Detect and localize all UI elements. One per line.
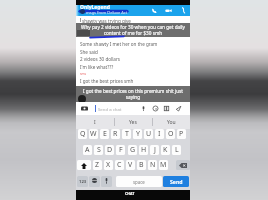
button[interactable]: L (172, 145, 181, 155)
staticText: H (141, 145, 147, 155)
staticText: Q (80, 129, 86, 139)
staticText: V (128, 160, 133, 170)
staticText: U (146, 129, 152, 139)
staticText: P (179, 129, 184, 139)
staticText: Z (95, 160, 100, 170)
button[interactable]: More options (180, 6, 187, 15)
button[interactable]: G (128, 145, 137, 155)
button[interactable]: 123 (77, 176, 88, 187)
button[interactable] (176, 160, 190, 170)
button[interactable]: F (116, 145, 125, 155)
button[interactable]: V (126, 160, 135, 170)
staticText: K (163, 145, 168, 155)
button[interactable]: H (139, 145, 148, 155)
button[interactable]: U (144, 129, 153, 139)
staticText: R (113, 129, 118, 139)
staticText: D (107, 145, 113, 155)
button[interactable]: Stickers (152, 105, 159, 112)
button[interactable]: Send (175, 105, 182, 112)
button[interactable]: B (137, 160, 146, 170)
button[interactable]: Voice message (140, 105, 147, 112)
button[interactable]: M (159, 160, 168, 170)
button[interactable]: N (148, 160, 157, 170)
button[interactable]: E (100, 129, 109, 139)
button[interactable]: Send (163, 176, 189, 187)
staticText: You (167, 119, 176, 126)
button[interactable]: J (150, 145, 159, 155)
button[interactable]: Q (78, 129, 87, 139)
staticText: A (85, 145, 90, 155)
staticText: Send (170, 178, 183, 185)
button[interactable]: Yes (114, 115, 152, 129)
button[interactable]: C (115, 160, 124, 170)
staticText: sms (80, 72, 87, 76)
staticText: I (158, 129, 161, 139)
staticText: T (125, 129, 129, 139)
staticText: Some shawty I met her on the gram (80, 41, 158, 47)
staticText: N (150, 160, 156, 170)
button[interactable]: Y (133, 129, 142, 139)
button[interactable] (101, 176, 112, 187)
staticText: S (97, 145, 101, 155)
button[interactable]: Gallery (163, 105, 170, 112)
staticText: Y (136, 129, 140, 139)
button[interactable]: O (166, 129, 175, 139)
staticText: L (175, 145, 179, 155)
button[interactable]: W (89, 129, 98, 139)
staticText: CHAT (125, 191, 135, 196)
staticText: space (133, 179, 145, 185)
button[interactable]: X (104, 160, 113, 170)
staticText: shawty was trying give (82, 18, 131, 24)
staticText: Why pay 2 videos for 30 when you can get… (79, 24, 187, 36)
button[interactable]: A (83, 145, 92, 155)
button[interactable]: space (116, 176, 162, 187)
staticText: C (117, 160, 122, 170)
button[interactable]: I (155, 129, 164, 139)
staticText: J (154, 145, 156, 155)
staticText: F (119, 145, 123, 155)
staticText: E (103, 129, 107, 139)
staticText: G (130, 145, 136, 155)
button[interactable]: P (177, 129, 186, 139)
staticText: I got the best prices smh (80, 78, 134, 84)
button[interactable]: Voice call (150, 6, 159, 15)
button[interactable]: Z (93, 160, 102, 170)
staticText: I got the best prices on this premium sh… (82, 88, 184, 100)
staticText: I (94, 119, 96, 126)
staticText: O (168, 129, 174, 139)
staticText: I'm like what??? (80, 64, 114, 70)
button[interactable]: T (122, 129, 131, 139)
staticText: B (139, 160, 144, 170)
staticText: 123 (79, 179, 87, 185)
button[interactable]: You (152, 115, 190, 129)
staticText: She said (80, 49, 98, 55)
button[interactable]: K (161, 145, 170, 155)
button[interactable]: Camera (81, 105, 88, 112)
staticText: Yes (129, 119, 137, 126)
button[interactable]: S (94, 145, 103, 155)
button[interactable] (77, 160, 91, 170)
staticText: OnlyLegend (80, 4, 110, 11)
staticText: X (106, 160, 111, 170)
button[interactable]: R (111, 129, 120, 139)
button[interactable] (89, 176, 100, 187)
staticText: M (160, 160, 167, 170)
staticText: 2 videos 30 dollars (80, 56, 121, 62)
staticText: W (90, 129, 97, 139)
staticText: Send a chat (98, 106, 122, 112)
button[interactable]: I (76, 115, 114, 129)
staticText: msgs from Deluxe Act (86, 10, 128, 15)
button[interactable]: D (105, 145, 114, 155)
button[interactable]: Video call (164, 6, 173, 15)
